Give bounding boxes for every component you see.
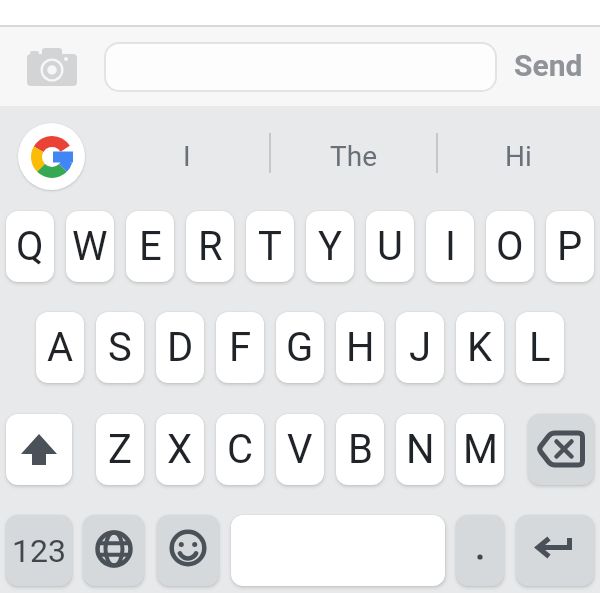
staticText: H: [346, 324, 375, 371]
button[interactable]: The: [270, 116, 437, 196]
staticText: 123: [12, 532, 66, 570]
button[interactable]: T: [246, 211, 294, 282]
staticText: Hi: [505, 140, 532, 173]
staticText: I: [183, 140, 191, 173]
button[interactable]: [24, 46, 80, 90]
button[interactable]: F: [216, 312, 264, 383]
staticText: O: [496, 223, 524, 270]
button[interactable]: E: [126, 211, 174, 282]
button[interactable]: V: [276, 414, 324, 485]
button[interactable]: K: [456, 312, 504, 383]
button[interactable]: Y: [306, 211, 354, 282]
button[interactable]: [456, 515, 504, 586]
button[interactable]: S: [96, 312, 144, 383]
button[interactable]: G: [276, 312, 324, 383]
button[interactable]: [516, 515, 594, 586]
button[interactable]: U: [366, 211, 414, 282]
staticText: J: [409, 324, 432, 371]
button[interactable]: N: [396, 414, 444, 485]
staticText: L: [529, 324, 551, 371]
staticText: P: [557, 223, 583, 270]
staticText: T: [258, 223, 282, 270]
staticText: M: [463, 426, 498, 473]
button[interactable]: M: [456, 414, 504, 485]
staticText: B: [348, 426, 373, 473]
button[interactable]: C: [216, 414, 264, 485]
staticText: R: [198, 223, 223, 270]
button[interactable]: [83, 515, 144, 586]
staticText: X: [167, 426, 193, 473]
staticText: K: [467, 324, 493, 371]
button[interactable]: [18, 123, 85, 190]
button[interactable]: [528, 414, 594, 485]
staticText: W: [72, 223, 108, 270]
button[interactable]: R: [186, 211, 234, 282]
staticText: G: [286, 324, 314, 371]
staticText: Y: [318, 223, 343, 270]
staticText: U: [377, 223, 403, 270]
button[interactable]: X: [156, 414, 204, 485]
button[interactable]: [104, 42, 497, 92]
staticText: Send: [514, 48, 583, 83]
staticText: E: [139, 223, 162, 270]
staticText: I: [445, 223, 456, 270]
button[interactable]: B: [336, 414, 384, 485]
button[interactable]: 123: [6, 515, 72, 586]
button[interactable]: Q: [6, 211, 54, 282]
button[interactable]: D: [156, 312, 204, 383]
button[interactable]: J: [396, 312, 444, 383]
staticText: C: [227, 426, 254, 473]
button[interactable]: I: [426, 211, 474, 282]
button[interactable]: H: [336, 312, 384, 383]
staticText: A: [47, 324, 74, 371]
button[interactable]: P: [546, 211, 594, 282]
staticText: D: [167, 324, 194, 371]
staticText: S: [108, 324, 132, 371]
button[interactable]: [231, 515, 445, 586]
button[interactable]: [157, 515, 219, 586]
button[interactable]: A: [36, 312, 84, 383]
staticText: F: [229, 324, 252, 371]
button[interactable]: [6, 414, 72, 485]
button[interactable]: Send: [497, 27, 600, 104]
button[interactable]: Z: [96, 414, 144, 485]
button[interactable]: I: [103, 116, 270, 196]
staticText: V: [287, 426, 313, 473]
button[interactable]: O: [486, 211, 534, 282]
staticText: Z: [108, 426, 132, 473]
button[interactable]: L: [516, 312, 564, 383]
button[interactable]: Hi: [437, 116, 600, 196]
staticText: N: [406, 426, 435, 473]
staticText: The: [330, 140, 377, 173]
staticText: Q: [16, 223, 44, 270]
button[interactable]: W: [66, 211, 114, 282]
